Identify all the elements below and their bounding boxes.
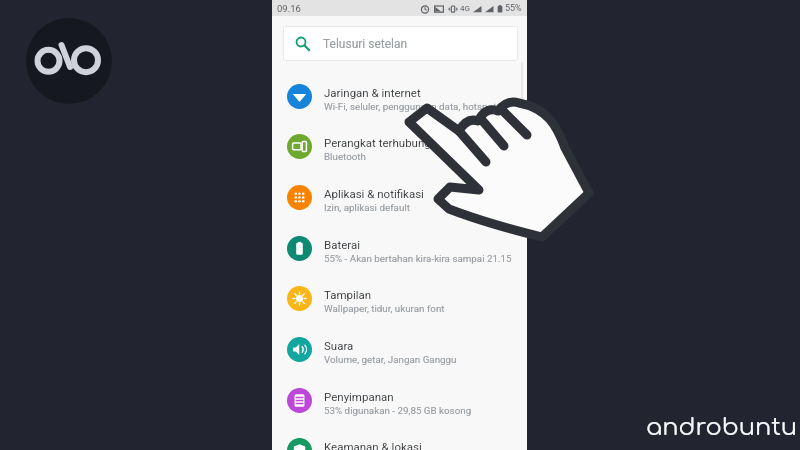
staticText: 09.16 bbox=[277, 3, 301, 14]
staticText: 55% bbox=[505, 3, 522, 14]
button[interactable]: Androbuntu logo bbox=[26, 18, 112, 104]
staticText: Izin, aplikasi default bbox=[324, 202, 410, 213]
button[interactable]: Aplikasi & notifikasi bbox=[272, 172, 527, 223]
button[interactable]: Jaringan & internet bbox=[272, 71, 527, 122]
staticText: Penyimpanan bbox=[324, 390, 394, 403]
staticText: Wi-Fi, seluler, penggunaan data, hotspot bbox=[324, 101, 497, 112]
staticText: Tampilan bbox=[324, 288, 372, 301]
staticText: Wallpaper, tidur, ukuran font bbox=[324, 303, 445, 314]
staticText: Bluetooth bbox=[324, 151, 366, 162]
staticText: 53% digunakan - 29,85 GB kosong bbox=[324, 405, 472, 416]
staticText: Baterai bbox=[324, 238, 361, 251]
staticText: Perangkat terhubung bbox=[324, 136, 431, 149]
staticText: 55% - Akan bertahan kira-kira sampai 21.… bbox=[324, 253, 512, 264]
button[interactable]: Tampilan bbox=[272, 273, 527, 324]
staticText: Volume, getar, Jangan Ganggu bbox=[324, 354, 457, 365]
staticText: Suara bbox=[324, 339, 354, 352]
button[interactable]: Telusuri setelan bbox=[283, 26, 518, 61]
staticText: Jaringan & internet bbox=[324, 86, 421, 99]
button[interactable]: Baterai bbox=[272, 223, 527, 274]
button[interactable]: Suara bbox=[272, 324, 527, 375]
staticText: Aplikasi & notifikasi bbox=[324, 187, 424, 200]
button[interactable]: Keamanan & lokasi bbox=[272, 425, 527, 450]
staticText: 4G bbox=[460, 4, 470, 13]
staticText: Keamanan & lokasi bbox=[324, 440, 422, 450]
staticText: androbuntu bbox=[646, 414, 798, 441]
button[interactable]: Penyimpanan bbox=[272, 375, 527, 426]
button[interactable]: Perangkat terhubung bbox=[272, 121, 527, 172]
staticText: Telusuri setelan bbox=[323, 37, 408, 51]
